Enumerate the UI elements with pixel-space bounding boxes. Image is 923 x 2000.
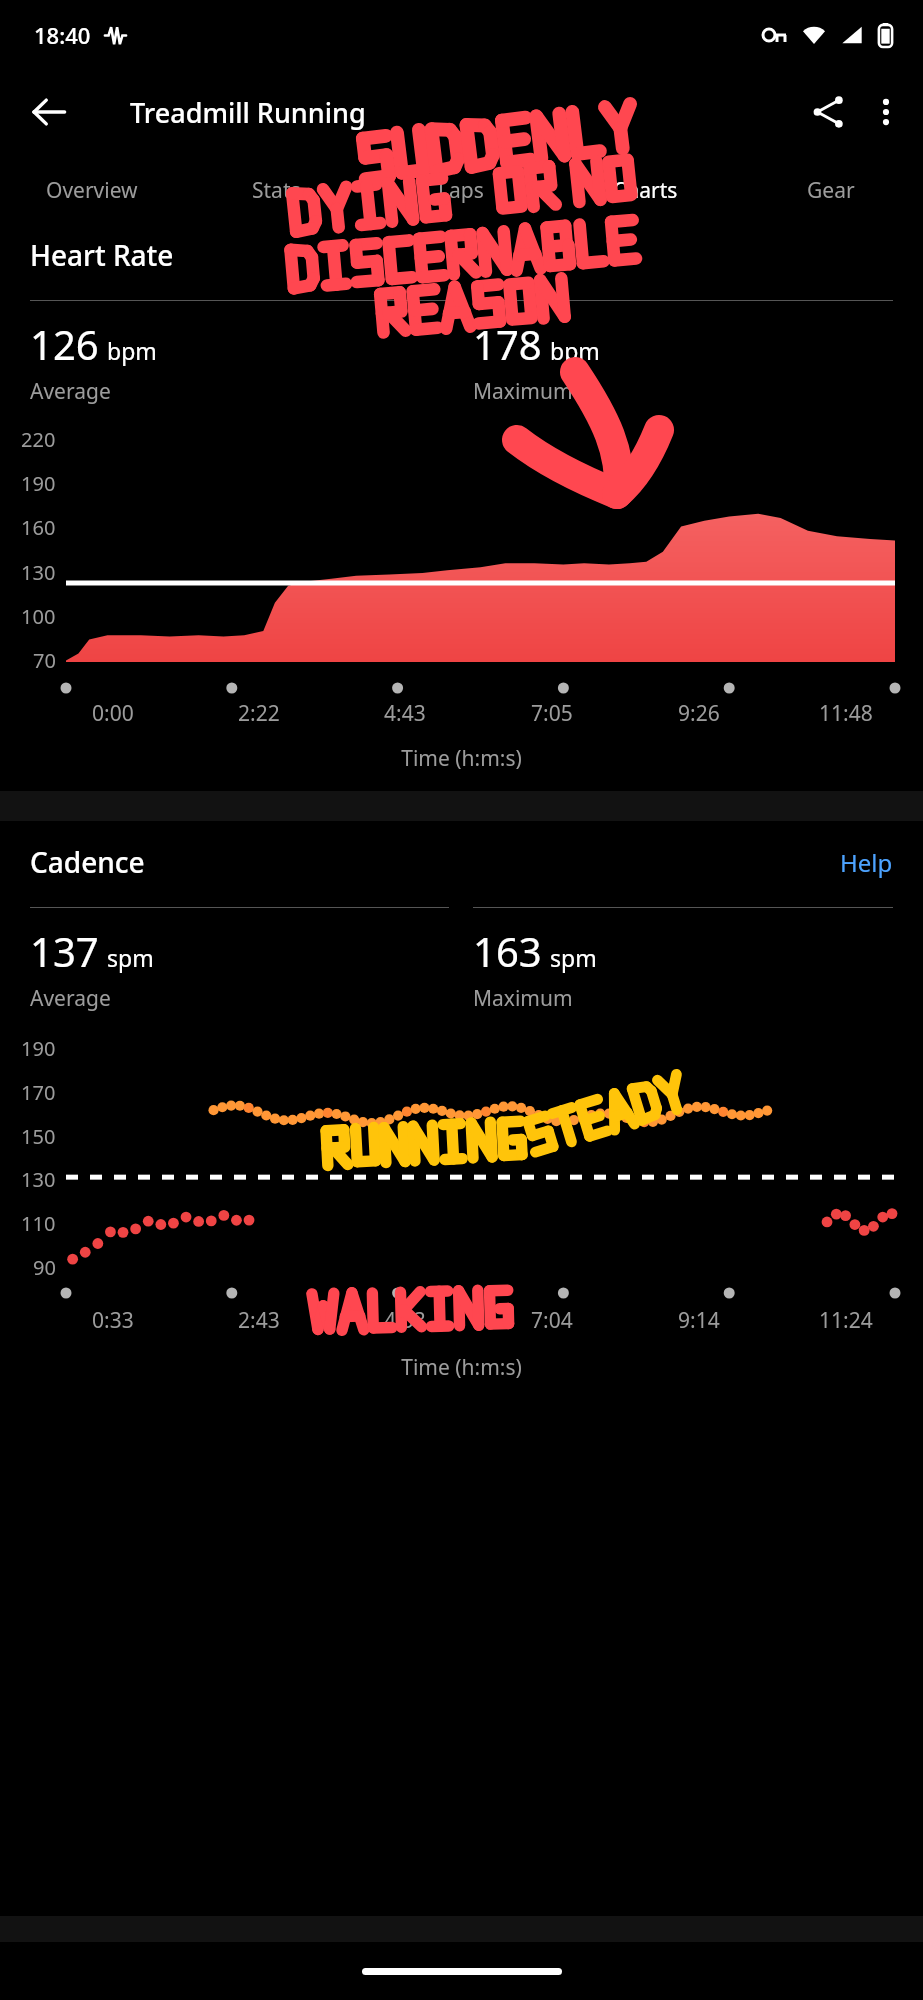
staticText: Laps <box>438 176 484 205</box>
staticText: 137 <box>30 924 99 978</box>
staticText: 100 <box>21 603 56 630</box>
staticText: Maximum <box>473 984 573 1013</box>
staticText: Overview <box>46 176 138 205</box>
staticText: 190 <box>21 1035 56 1062</box>
staticText: Gear <box>807 176 855 205</box>
button[interactable]: Stats <box>184 154 368 226</box>
staticText: Average <box>30 984 111 1013</box>
staticText: 220 <box>21 426 56 453</box>
staticText: Stats <box>252 176 301 205</box>
staticText: 110 <box>21 1210 56 1237</box>
button[interactable]: More options <box>859 85 913 139</box>
staticText: 0:00 <box>92 699 134 728</box>
staticText: 4:53 <box>384 1306 426 1335</box>
button[interactable]: Share <box>797 81 859 143</box>
staticText: Help <box>840 846 893 879</box>
staticText: Heart Rate <box>30 236 174 274</box>
staticText: Time (h:m:s) <box>0 1353 923 1382</box>
staticText: 126 <box>30 317 99 371</box>
staticText: 170 <box>21 1079 56 1106</box>
button[interactable]: Charts <box>553 154 738 226</box>
staticText: 11:48 <box>819 699 873 728</box>
staticText: 7:05 <box>531 699 573 728</box>
staticText: 9:14 <box>678 1306 720 1335</box>
staticText: 11:24 <box>819 1306 873 1335</box>
staticText: 130 <box>21 559 56 586</box>
button[interactable]: Laps <box>368 154 553 226</box>
staticText: 90 <box>33 1254 56 1281</box>
button[interactable]: Help <box>840 846 893 879</box>
staticText: 4:43 <box>384 699 426 728</box>
staticText: 18:40 <box>34 20 91 50</box>
staticText: 163 <box>473 924 542 978</box>
staticText: Time (h:m:s) <box>0 744 923 773</box>
button[interactable]: Gear <box>738 154 923 226</box>
staticText: Cadence <box>30 843 145 881</box>
staticText: spm <box>550 942 597 973</box>
staticText: 130 <box>21 1166 56 1193</box>
staticText: 9:26 <box>678 699 720 728</box>
staticText: Charts <box>613 176 678 205</box>
staticText: Treadmill Running <box>130 94 366 131</box>
staticText: 2:43 <box>238 1306 280 1335</box>
staticText: 2:22 <box>238 699 280 728</box>
button[interactable]: Back <box>18 81 80 143</box>
staticText: 0:33 <box>92 1306 134 1335</box>
staticText: 150 <box>21 1123 56 1150</box>
staticText: bpm <box>550 335 600 366</box>
staticText: Average <box>30 377 111 406</box>
staticText: 160 <box>21 514 56 541</box>
staticText: 70 <box>33 647 56 674</box>
button[interactable]: Overview <box>0 154 184 226</box>
staticText: 190 <box>21 470 56 497</box>
staticText: 178 <box>473 317 542 371</box>
staticText: Maximum <box>473 377 573 406</box>
staticText: 7:04 <box>531 1306 573 1335</box>
staticText: bpm <box>107 335 157 366</box>
staticText: spm <box>107 942 154 973</box>
